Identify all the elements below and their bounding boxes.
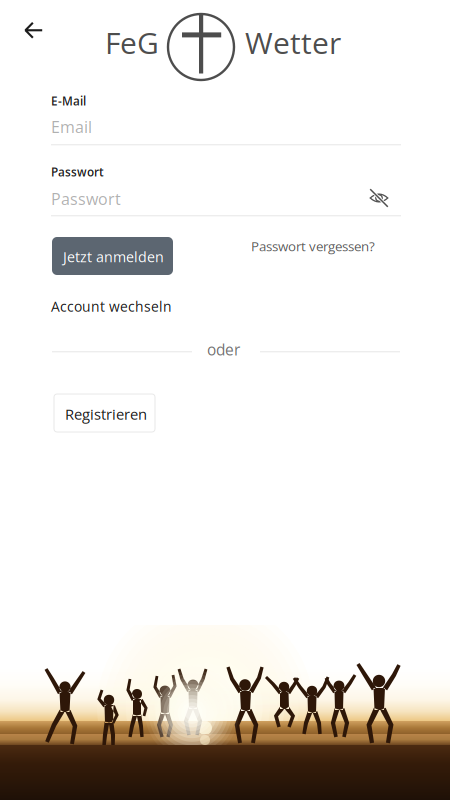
- staticText: FeG: [105, 22, 159, 63]
- staticText: E-Mail: [51, 93, 86, 109]
- staticText: Wetter: [245, 22, 341, 63]
- staticText: Passwort: [51, 188, 121, 210]
- button[interactable]: Show password: [369, 188, 389, 208]
- button[interactable]: Jetzt anmelden: [52, 237, 173, 275]
- staticText: Jetzt anmelden: [63, 247, 164, 266]
- button[interactable]: Back: [0, 0, 50, 52]
- staticText: oder: [207, 339, 240, 360]
- button[interactable]: Account wechseln: [51, 297, 172, 316]
- staticText: Passwort vergessen?: [251, 237, 375, 255]
- staticText: Account wechseln: [51, 297, 172, 316]
- staticText: Passwort: [51, 164, 104, 180]
- staticText: Registrieren: [65, 404, 147, 424]
- button[interactable]: Passwort vergessen?: [251, 237, 375, 255]
- button[interactable]: Registrieren: [54, 394, 155, 432]
- staticText: Email: [51, 116, 92, 138]
